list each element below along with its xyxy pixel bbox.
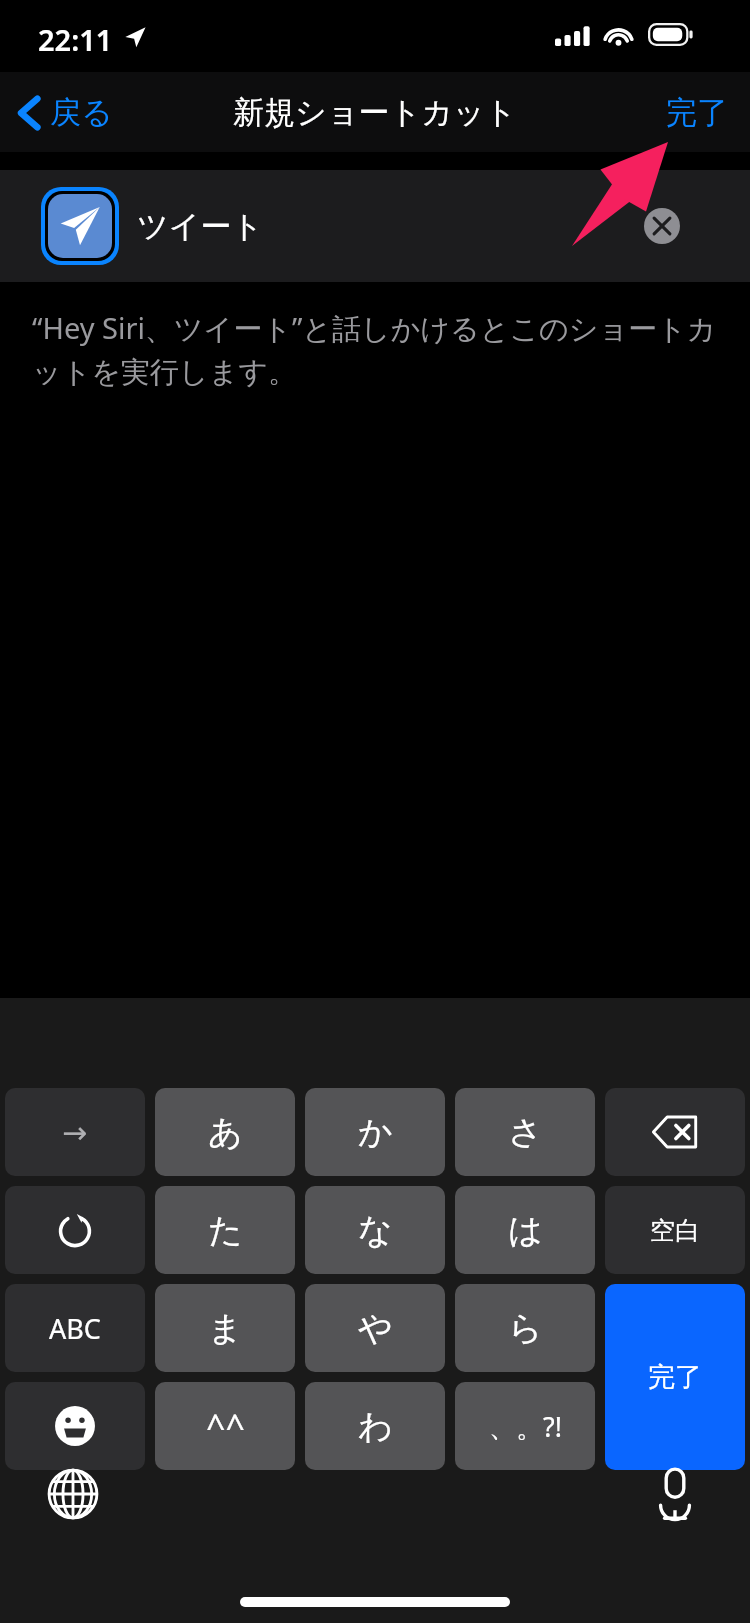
staticText: ABC [49,1310,101,1347]
staticText: ら [508,1307,543,1350]
staticText: 空白 [650,1215,700,1246]
staticText: な [358,1209,393,1252]
staticText: 22:11 [38,20,113,59]
staticText: → [62,1115,88,1150]
staticText: 新規ショートカット [233,93,517,132]
button[interactable]: 完了 [644,83,750,142]
button[interactable]: 、。?! [455,1382,595,1470]
staticText: か [358,1111,393,1154]
button[interactable]: 次のキーボード [42,1463,104,1525]
button[interactable]: 完了 [605,1284,745,1470]
button[interactable]: 削除 [640,204,684,248]
button[interactable]: 削除 [605,1088,745,1176]
staticText: 戻る [50,93,113,132]
button[interactable]: か [305,1088,445,1176]
button[interactable]: ^^ [155,1382,295,1470]
button[interactable]: → [5,1088,145,1176]
staticText: は [508,1209,543,1252]
staticText: “Hey Siri、ツイート”と話しかけるとこのショートカ [32,308,717,348]
button[interactable]: 空白 [605,1186,745,1274]
button[interactable]: 戻る [0,85,129,140]
staticText: あ [208,1111,243,1154]
button[interactable]: ら [455,1284,595,1372]
button[interactable]: ま [155,1284,295,1372]
staticText: 完了 [648,1360,702,1394]
button[interactable]: あ [155,1088,295,1176]
button[interactable]: ABC [5,1284,145,1372]
staticText: ツイート [137,207,264,246]
button[interactable]: ツイート [0,170,750,282]
staticText: わ [358,1405,393,1448]
staticText: ^^ [206,1403,245,1449]
button[interactable]: た [155,1186,295,1274]
button[interactable]: は [455,1186,595,1274]
staticText: ま [208,1307,243,1350]
staticText: ットを実行します。 [32,354,298,391]
staticText: 、。?! [489,1408,562,1445]
staticText: 完了 [666,93,728,132]
button[interactable]: わ [305,1382,445,1470]
button[interactable]: や [305,1284,445,1372]
button[interactable]: な [305,1186,445,1274]
staticText: や [358,1307,393,1350]
button[interactable]: 絵文字 [5,1382,145,1470]
button[interactable]: 音声入力 [644,1463,706,1525]
button[interactable]: 取り消し [5,1186,145,1274]
staticText: さ [508,1111,543,1154]
staticText: た [208,1209,243,1252]
button[interactable]: さ [455,1088,595,1176]
